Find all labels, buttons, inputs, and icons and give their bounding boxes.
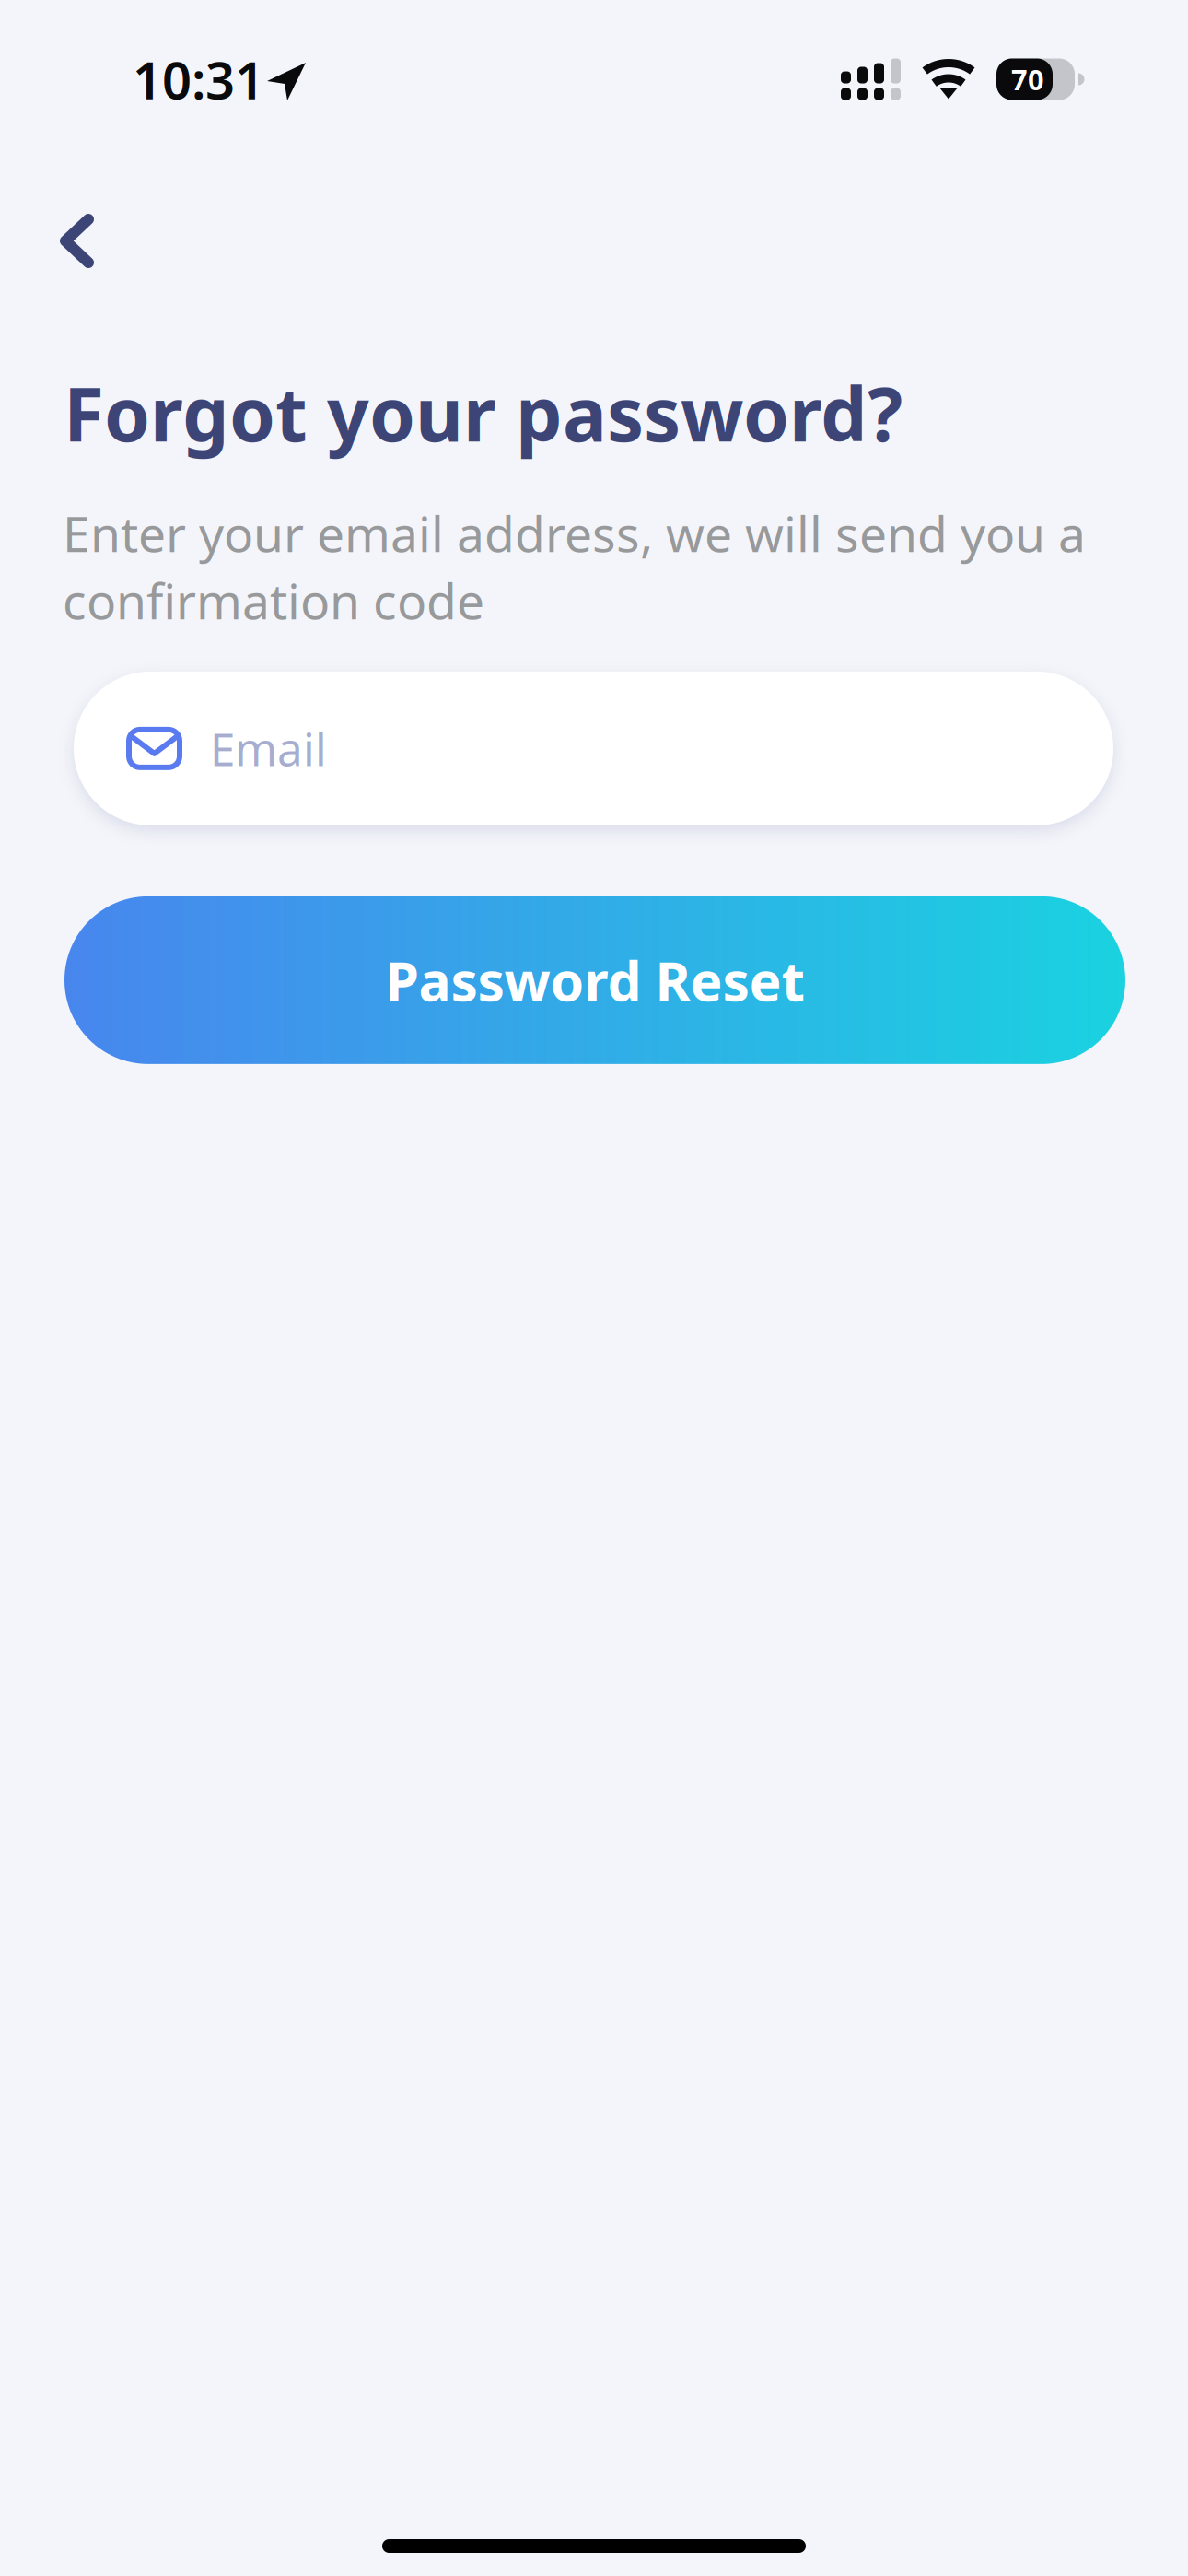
staticText: 70 (1011, 60, 1044, 98)
staticText: 10:31 (133, 45, 264, 114)
staticText: Password Reset (385, 944, 804, 1016)
staticText: Enter your email address, we will send y… (63, 500, 1086, 633)
button[interactable]: Password Reset (64, 896, 1125, 1064)
button[interactable]: Email (74, 672, 1113, 825)
button[interactable]: Back (34, 193, 120, 288)
staticText: Forgot your password? (64, 364, 903, 462)
staticText: Email (210, 718, 327, 779)
